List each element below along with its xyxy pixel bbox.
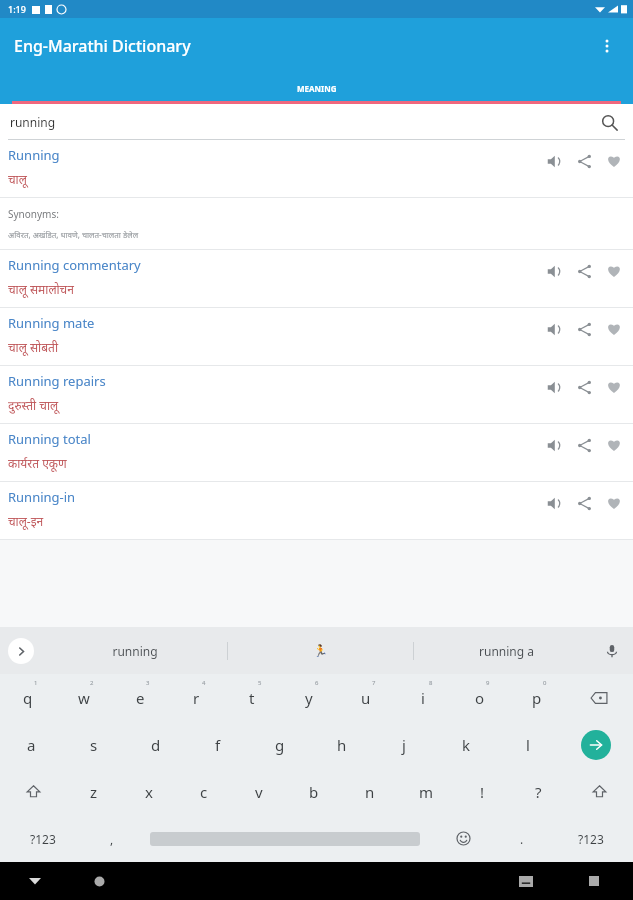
button[interactable]: Running-in [0,482,633,540]
button[interactable]: Share [569,488,599,518]
staticText: q [23,688,33,708]
button[interactable]: 5 [224,674,280,721]
button[interactable]: d [125,721,187,768]
button[interactable]: 8 [394,674,451,721]
button[interactable]: ? [510,768,566,815]
button[interactable]: Favorite [599,146,629,176]
button[interactable]: running a [414,627,599,674]
button[interactable]: Running [0,140,633,250]
button[interactable]: MEANING [0,74,633,104]
button[interactable]: n [342,768,398,815]
staticText: u [361,688,371,708]
staticText: k [462,735,471,755]
button[interactable]: Favorite [599,256,629,286]
button[interactable]: 7 [337,674,394,721]
button[interactable]: 4 [168,674,224,721]
button[interactable]: Speak [539,488,569,518]
button[interactable]: Share [569,146,599,176]
button[interactable]: More options [587,26,627,66]
button[interactable]: c [176,768,231,815]
button[interactable]: Speak [539,146,569,176]
staticText: g [275,735,285,755]
button[interactable]: 6 [280,674,337,721]
staticText: w [78,688,90,708]
button[interactable]: , [85,815,138,862]
button[interactable]: ?123 [548,815,633,862]
button[interactable]: Recents [581,868,607,894]
button[interactable]: Running repairs [0,366,633,424]
staticText: n [365,782,375,802]
button[interactable]: . [495,815,548,862]
button[interactable]: s [63,721,125,768]
button[interactable]: 2 [56,674,112,721]
button[interactable]: running [42,627,227,674]
button[interactable]: x [121,768,176,815]
button[interactable]: Emoji [431,815,495,862]
button[interactable]: ?123 [0,815,85,862]
staticText: h [337,735,347,755]
button[interactable]: Keyboard [513,868,539,894]
staticText: e [136,688,145,708]
button[interactable]: backspace [565,674,633,721]
button[interactable]: Share [569,256,599,286]
staticText: Running mate [8,314,95,332]
button[interactable]: m [398,768,454,815]
button[interactable]: 1 [0,674,56,721]
button[interactable]: Expand suggestions [8,638,34,664]
button[interactable]: ! [454,768,510,815]
button[interactable]: 0 [508,674,565,721]
button[interactable]: Running mate [0,308,633,366]
staticText: running [10,114,56,130]
staticText: d [151,735,161,755]
button[interactable]: shift [0,768,66,815]
staticText: m [419,782,434,802]
staticText: z [90,782,98,802]
button[interactable]: Favorite [599,488,629,518]
button[interactable]: 9 [451,674,508,721]
button[interactable]: 3 [112,674,168,721]
button[interactable]: Speak [539,314,569,344]
button[interactable]: enter [559,721,633,768]
button[interactable]: Favorite [599,372,629,402]
button[interactable]: Search [595,108,623,136]
staticText: कार्यरत एकूण [8,455,67,471]
staticText: अविरत, अखंडित, धावणे, चालत-चालता डेलेल [8,229,139,240]
button[interactable]: a [0,721,63,768]
button[interactable]: Share [569,372,599,402]
button[interactable]: z [66,768,121,815]
staticText: f [215,735,221,755]
button[interactable]: l [497,721,559,768]
staticText: 7 [372,679,376,687]
button[interactable]: Back [22,868,48,894]
staticText: 4 [202,679,206,687]
button[interactable]: shift [566,768,633,815]
staticText: चालू-इन [8,513,44,529]
button[interactable]: f [187,721,249,768]
button[interactable]: Share [569,430,599,460]
button[interactable]: g [249,721,311,768]
staticText: 2 [90,679,94,687]
button[interactable]: Speak [539,256,569,286]
button[interactable]: Share [569,314,599,344]
button[interactable]: Speak [539,372,569,402]
button[interactable]: 🏃 [228,627,413,674]
button[interactable]: Home [86,868,112,894]
button[interactable]: v [231,768,286,815]
staticText: . [520,831,524,847]
button[interactable]: Favorite [599,430,629,460]
staticText: Running commentary [8,256,141,274]
button[interactable]: Running total [0,424,633,482]
button[interactable]: Running commentary [0,250,633,308]
button[interactable]: Favorite [599,314,629,344]
button[interactable]: j [373,721,435,768]
staticText: Running-in [8,488,76,506]
button[interactable]: Speak [539,430,569,460]
button[interactable]: Voice input [599,638,625,664]
staticText: 8 [429,679,433,687]
button[interactable]: Space [138,815,431,862]
staticText: MEANING [297,83,337,94]
button[interactable]: b [286,768,342,815]
button[interactable]: h [311,721,373,768]
button[interactable]: k [435,721,497,768]
staticText: x [145,782,153,802]
